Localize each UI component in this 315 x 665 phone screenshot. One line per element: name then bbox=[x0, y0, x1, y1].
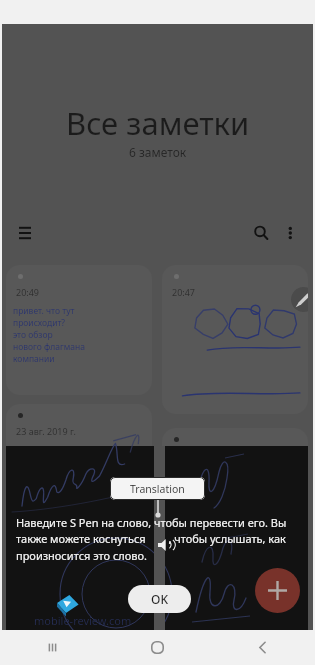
button[interactable]: More options bbox=[268, 211, 312, 255]
button[interactable]: Search bbox=[238, 211, 282, 255]
staticText: привет. что тут происходит? это обзор но… bbox=[13, 305, 85, 365]
staticText: Все заметки bbox=[66, 102, 250, 144]
button[interactable]: 20:49 bbox=[6, 265, 152, 395]
staticText: 23 авг. 2019 г. bbox=[16, 425, 76, 437]
button[interactable]: Navigation menu bbox=[3, 211, 47, 255]
button[interactable]: Edit note bbox=[291, 287, 308, 312]
button[interactable]: Translation bbox=[110, 477, 205, 500]
staticText: 22 авг. 2019 г. bbox=[172, 449, 232, 461]
button[interactable]: Back bbox=[210, 630, 315, 665]
staticText: 20:49 bbox=[16, 286, 40, 298]
button[interactable]: Home bbox=[105, 630, 210, 665]
button[interactable]: Recent apps bbox=[0, 630, 105, 665]
staticText: OK bbox=[151, 591, 168, 607]
staticText: 6 заметок bbox=[129, 144, 187, 160]
button[interactable]: 20:47 bbox=[162, 265, 308, 414]
staticText: mobile-review.com bbox=[34, 613, 132, 628]
staticText: Translation bbox=[130, 482, 185, 496]
staticText: 20:47 bbox=[172, 286, 196, 298]
staticText: Наведите S Pen на слово, чтобы перевести… bbox=[16, 515, 287, 564]
button[interactable]: New note bbox=[255, 568, 300, 613]
button[interactable]: 23 авг. 2019 г. bbox=[6, 404, 152, 604]
button[interactable]: OK bbox=[128, 585, 191, 613]
button[interactable]: 22 авг. 2019 г. bbox=[162, 428, 308, 628]
